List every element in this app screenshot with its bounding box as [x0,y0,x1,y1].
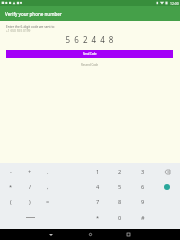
staticText: Send Code [83,52,97,56]
button[interactable]: / [21,179,39,194]
button[interactable]: +1 650 555 0199 [6,29,31,33]
button[interactable]: 3 [134,164,152,179]
staticText: 2 [118,168,122,176]
staticText: 5 [118,183,122,191]
staticText: 8 [118,198,122,206]
staticText: * [96,214,100,222]
staticText: # [141,214,145,222]
staticText: = [46,198,50,206]
button[interactable]: Resend Code [0,61,180,69]
button[interactable]: 1 [89,164,107,179]
button[interactable]: Backspace [159,164,175,179]
staticText: ( [10,198,12,206]
staticText: . [47,168,49,176]
button[interactable]: + [21,164,39,179]
button[interactable]: - [2,164,20,179]
staticText: 7 [96,198,100,206]
staticText: 0 [118,214,122,222]
staticText: * [9,183,13,191]
staticText: 5 6 2 4 4 8 [0,34,180,45]
button[interactable]: 0 [111,210,129,225]
button[interactable]: ( [2,194,20,209]
button[interactable]: 6 [134,179,152,194]
button[interactable]: # [134,210,152,225]
staticText: , [47,183,49,191]
staticText: / [29,183,32,191]
staticText: + [28,168,32,176]
button[interactable]: * [89,210,107,225]
button[interactable]: Back [45,229,57,240]
button[interactable]: 7 [89,194,107,209]
button[interactable]: Space [22,210,38,225]
button[interactable]: 9 [134,194,152,209]
button[interactable]: = [39,194,57,209]
button[interactable]: 4 [89,179,107,194]
button[interactable]: 5 [111,179,129,194]
button[interactable]: * [2,179,20,194]
button[interactable]: ) [21,194,39,209]
staticText: 9 [141,198,145,206]
button[interactable]: Enter [159,179,175,194]
staticText: 4 [96,183,100,191]
button[interactable]: 8 [111,194,129,209]
staticText: 6 [141,183,145,191]
button[interactable]: Home [84,229,96,240]
staticText: Enter the 6-digit code we sent to [6,25,55,29]
staticText: Verify your phone number [5,11,62,17]
staticText: - [10,168,12,176]
staticText: Resend Code [81,63,99,67]
staticText: 3 [141,168,145,176]
staticText: 12:00 [170,1,179,6]
staticText: ) [29,198,31,206]
button[interactable]: Recents [122,229,134,240]
staticText: 1 [96,168,100,176]
button[interactable]: 2 [111,164,129,179]
button[interactable]: Send Code [6,50,173,58]
button[interactable]: , [39,179,57,194]
